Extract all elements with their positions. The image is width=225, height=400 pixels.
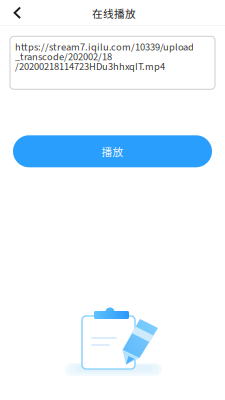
staticText: 在线播放 (92, 5, 136, 21)
staticText: https://stream7.iqilu.com/10339/upload _… (15, 42, 194, 72)
button[interactable]: 播放 (13, 135, 212, 167)
staticText: 播放 (101, 144, 123, 159)
button[interactable]: Back (0, 1, 31, 24)
